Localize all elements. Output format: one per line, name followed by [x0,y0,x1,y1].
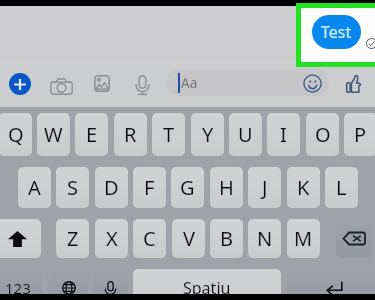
staticText: H [219,174,234,201]
button[interactable]: Voice message [130,73,154,97]
button[interactable]: S [56,167,89,208]
button[interactable]: V [172,219,205,258]
button[interactable]: T [152,113,185,156]
staticText: T [163,121,175,148]
button[interactable]: Aa [166,69,329,96]
button[interactable]: Spatiu [133,269,281,300]
staticText: B [220,225,233,252]
staticText: Y [202,121,214,148]
button[interactable]: E [75,113,108,156]
staticText: D [104,174,119,201]
button[interactable]: 123 [0,269,42,300]
button[interactable]: H [210,167,243,208]
button[interactable]: K [287,167,320,208]
staticText: O [315,121,331,148]
staticText: Z [67,225,79,252]
button[interactable]: O [306,113,339,156]
staticText: R [124,121,137,148]
button[interactable]: Photos [93,74,110,92]
button[interactable]: Z [56,219,89,258]
button[interactable]: U [229,113,262,156]
button[interactable]: Y [191,113,224,156]
button[interactable]: A [18,167,51,208]
staticText: Q [8,121,24,148]
button[interactable]: L [325,167,358,208]
button[interactable]: R [114,113,147,156]
staticText: G [180,174,195,201]
staticText: K [297,174,310,201]
button[interactable]: Backspace [336,219,372,258]
button[interactable]: Shift [0,219,41,258]
button[interactable]: N [248,219,281,258]
staticText: Aa [181,74,198,92]
button[interactable]: Like [340,70,366,96]
button[interactable]: M [287,219,320,258]
button[interactable]: J [248,167,281,208]
staticText: Test [321,21,352,43]
button[interactable]: Test [312,15,361,49]
staticText: S [67,174,78,201]
staticText: W [44,121,63,148]
staticText: M [294,225,313,252]
staticText: L [336,174,347,201]
staticText: C [143,225,156,252]
staticText: N [257,225,273,252]
button[interactable]: Change keyboard [49,269,88,300]
staticText: P [354,121,367,148]
button[interactable]: More options [9,73,31,95]
staticText: X [106,225,118,252]
button[interactable]: Return [287,269,375,300]
staticText: U [238,121,253,148]
button[interactable]: X [95,219,128,258]
button[interactable]: P [344,113,375,156]
button[interactable]: G [171,167,204,208]
staticText: E [86,121,98,148]
button[interactable]: Dictate [93,269,128,300]
staticText: F [144,174,155,201]
staticText: I [280,121,287,148]
staticText: J [262,174,268,201]
staticText: 123 [5,278,31,298]
button[interactable]: W [37,113,70,156]
button[interactable]: B [210,219,243,258]
button[interactable]: C [133,219,166,258]
button[interactable]: Camera [48,73,74,99]
staticText: A [28,174,41,201]
button[interactable]: I [267,113,300,156]
button[interactable]: D [95,167,128,208]
staticText: V [183,225,195,252]
staticText: Spatiu [183,277,231,299]
button[interactable]: Q [0,113,32,156]
button[interactable]: F [133,167,166,208]
